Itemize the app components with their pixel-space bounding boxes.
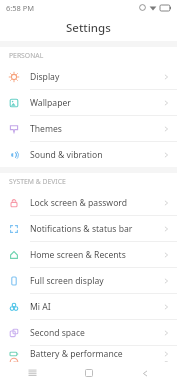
staticText: SYSTEM & DEVICE — [9, 177, 66, 186]
staticText: Battery & performance — [30, 348, 123, 360]
staticText: PERSONAL — [9, 51, 44, 60]
button[interactable]: Notifications & status bar — [0, 216, 177, 242]
button[interactable]: Back — [121, 362, 169, 384]
staticText: Sound & vibration — [30, 149, 103, 161]
staticText: Mi AI — [30, 301, 51, 313]
staticText: Settings — [66, 20, 111, 36]
button[interactable]: Sound & vibration — [0, 142, 177, 167]
button[interactable]: Home — [65, 362, 113, 384]
staticText: Full screen display — [30, 275, 104, 287]
staticText: Display — [30, 71, 60, 83]
button[interactable]: Home screen & Recents — [0, 242, 177, 268]
button[interactable]: Mi AI — [0, 294, 177, 320]
staticText: Lock screen & password — [30, 197, 127, 209]
button[interactable]: Lock screen & password — [0, 190, 177, 216]
button[interactable]: Display — [0, 64, 177, 90]
staticText: Home screen & Recents — [30, 249, 126, 261]
button[interactable]: Themes — [0, 116, 177, 142]
button[interactable]: Recents — [8, 362, 56, 384]
button[interactable]: Full screen display — [0, 268, 177, 294]
button[interactable]: Second space — [0, 320, 177, 346]
staticText: 6:58 PM — [6, 3, 35, 13]
staticText: Notifications & status bar — [30, 223, 133, 235]
button[interactable]: Wallpaper — [0, 90, 177, 116]
staticText: Themes — [30, 123, 62, 135]
staticText: Wallpaper — [30, 97, 71, 109]
staticText: Second space — [30, 327, 85, 339]
button[interactable]: Battery & performance — [0, 346, 177, 362]
